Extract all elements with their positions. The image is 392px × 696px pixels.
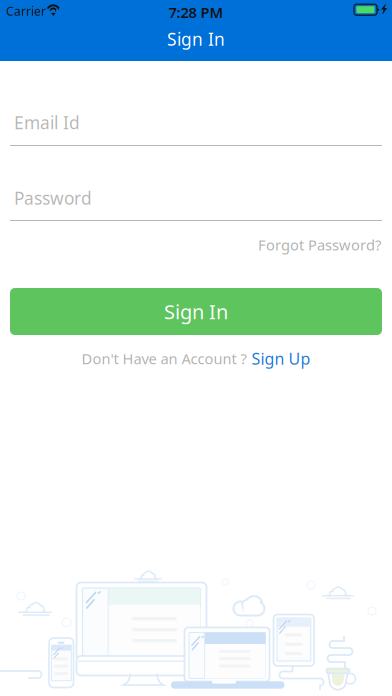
button[interactable]: Forgot Password? <box>0 235 381 254</box>
staticText: Password <box>14 186 92 209</box>
staticText: Sign In <box>167 27 225 50</box>
staticText: Email Id <box>14 111 80 134</box>
staticText: Carrier <box>6 3 46 19</box>
button[interactable]: Sign Up <box>251 348 310 369</box>
staticText: Don't Have an Account ? <box>81 349 246 368</box>
button[interactable]: Sign In <box>10 288 382 335</box>
staticText: Sign Up <box>251 348 310 369</box>
staticText: 7:28 PM <box>168 2 223 22</box>
staticText: Sign In <box>164 298 228 325</box>
staticText: Forgot Password? <box>258 235 381 254</box>
